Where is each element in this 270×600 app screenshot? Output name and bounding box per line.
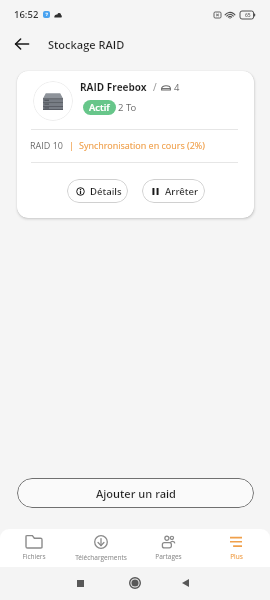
staticText: Détails [90, 185, 122, 198]
staticText: | [69, 139, 74, 151]
staticText: Arrêter [165, 185, 199, 198]
staticText: Synchronisation en cours (2%) [79, 139, 205, 151]
staticText: 2 To [118, 101, 137, 114]
staticText: 65 [245, 12, 251, 19]
staticText: Fichiers [22, 552, 46, 561]
staticText: Actif [89, 101, 110, 114]
button[interactable]: Fichiers [0, 535, 67, 561]
button[interactable]: Plus [202, 535, 270, 561]
staticText: Partages [155, 552, 182, 561]
button[interactable]: Arrêter [142, 179, 205, 203]
staticText: Stockage RAID [48, 37, 125, 52]
button[interactable]: Ajouter un raid [17, 478, 254, 508]
staticText: Téléchargements [75, 553, 127, 562]
staticText: Ajouter un raid [96, 486, 176, 501]
staticText: 4 [174, 81, 180, 94]
button[interactable]: Téléchargements [67, 535, 134, 562]
staticText: Plus [230, 552, 243, 561]
button[interactable]: Partages [134, 535, 202, 561]
staticText: / [153, 80, 157, 94]
staticText: 16:52 [14, 8, 39, 21]
staticText: RAID 10 [30, 139, 63, 151]
button[interactable]: Retour [5, 27, 39, 61]
staticText: RAID Freebox [80, 80, 147, 94]
button[interactable]: Détails [67, 179, 128, 203]
